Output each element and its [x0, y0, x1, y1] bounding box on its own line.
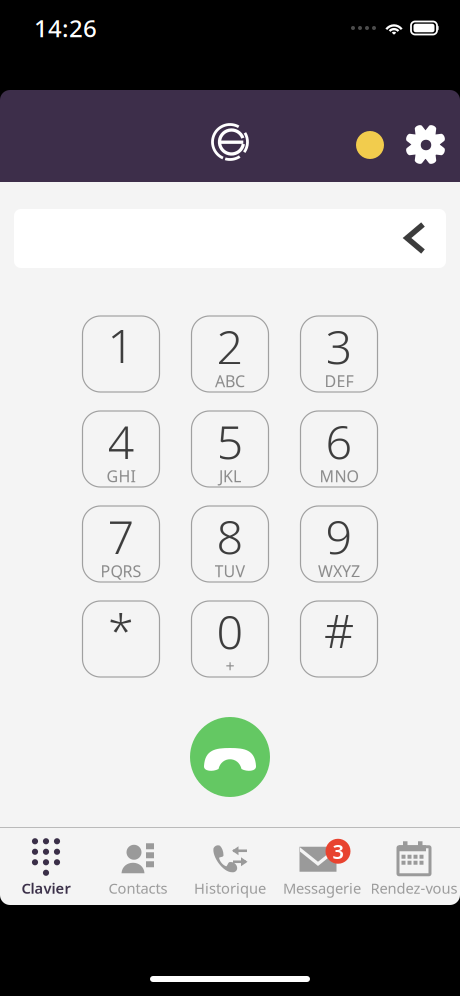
button[interactable]: 4 — [82, 411, 159, 487]
button[interactable]: * — [82, 601, 159, 677]
staticText: 8 — [216, 505, 243, 567]
button[interactable]: 3 — [276, 828, 368, 905]
staticText: Messagerie — [283, 878, 361, 898]
button[interactable]: 3 — [300, 316, 377, 392]
staticText: 4 — [107, 410, 134, 472]
button[interactable]: 6 — [300, 411, 377, 487]
button[interactable]: 5 — [191, 411, 268, 487]
button[interactable]: 9 — [300, 506, 377, 582]
button[interactable]: Contacts — [92, 828, 184, 905]
button[interactable]: 7 — [82, 506, 159, 582]
staticText: DEF — [324, 370, 353, 392]
button[interactable]: 8 — [191, 506, 268, 582]
button[interactable]: 2 — [191, 316, 268, 392]
staticText: 0 — [216, 600, 243, 662]
staticText: 14:26 — [34, 12, 97, 44]
staticText: 1 — [107, 314, 134, 376]
staticText: 5 — [216, 410, 243, 472]
staticText: TUV — [214, 560, 245, 582]
staticText: WXYZ — [318, 560, 360, 582]
button[interactable]: Clavier — [0, 828, 92, 905]
button[interactable]: Rendez-vous — [368, 828, 460, 905]
staticText: 3 — [325, 315, 352, 377]
staticText: * — [108, 599, 134, 661]
staticText: MNO — [319, 465, 358, 487]
button[interactable]: # — [300, 601, 377, 677]
button[interactable]: Réglages — [397, 111, 455, 173]
staticText: 7 — [107, 505, 134, 567]
button[interactable]: Effacer — [384, 207, 446, 269]
staticText: JKL — [219, 465, 241, 487]
staticText: 9 — [325, 505, 352, 567]
button[interactable]: 0 — [191, 601, 268, 677]
button[interactable]: 1 — [82, 316, 159, 392]
staticText: + — [225, 655, 234, 677]
button[interactable]: Historique — [184, 828, 276, 905]
staticText: Rendez-vous — [370, 878, 457, 898]
button[interactable]: Statut — [343, 111, 397, 173]
staticText: 2 — [216, 315, 243, 377]
staticText: PQRS — [100, 560, 141, 582]
staticText: ABC — [215, 370, 245, 392]
staticText: 6 — [325, 410, 352, 472]
staticText: GHI — [106, 465, 135, 487]
staticText: Clavier — [21, 878, 70, 898]
button[interactable]: Appeler — [190, 717, 270, 797]
staticText: Contacts — [108, 878, 167, 898]
staticText: 3 — [332, 838, 343, 865]
staticText: Historique — [194, 878, 266, 898]
staticText: # — [324, 599, 354, 661]
